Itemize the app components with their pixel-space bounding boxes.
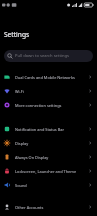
- button[interactable]: Lockscreen, Launcher and Theme: [0, 164, 97, 178]
- button[interactable]: Wi-Fi: [0, 84, 97, 98]
- staticText: Display: [15, 141, 88, 146]
- staticText: Lockscreen, Launcher and Theme: [15, 169, 88, 174]
- staticText: Wi-Fi: [15, 89, 88, 94]
- button[interactable]: Display: [0, 136, 97, 150]
- button[interactable]: Notification and Status Bar: [0, 122, 97, 136]
- staticText: Always On Display: [15, 155, 88, 160]
- staticText: More connection settings: [15, 103, 88, 108]
- button[interactable]: Sound: [0, 178, 97, 192]
- staticText: Settings: [4, 30, 30, 39]
- button[interactable]: Pull down to search settings: [4, 50, 93, 62]
- button[interactable]: Other Accounts: [0, 200, 97, 214]
- staticText: Notification and Status Bar: [15, 127, 88, 132]
- staticText: Dual Cards and Mobile Networks: [15, 75, 88, 80]
- button[interactable]: Always On Display: [0, 150, 97, 164]
- staticText: Sound: [15, 183, 88, 188]
- staticText: Pull down to search settings: [15, 53, 69, 59]
- staticText: Other Accounts: [15, 205, 88, 210]
- button[interactable]: More connection settings: [0, 98, 97, 112]
- button[interactable]: Dual Cards and Mobile Networks: [0, 70, 97, 84]
